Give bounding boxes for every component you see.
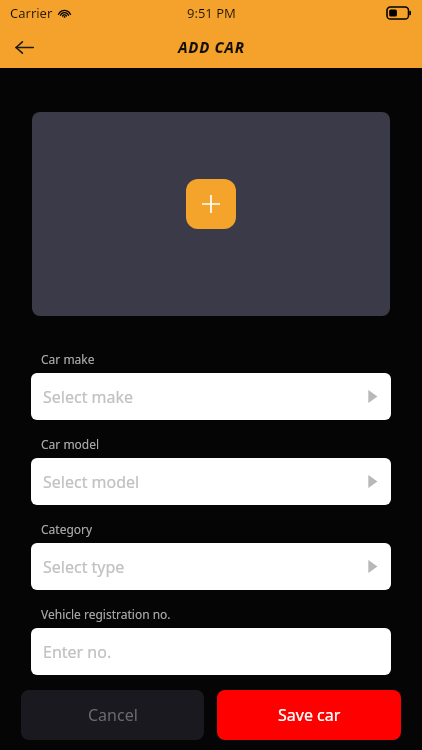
staticText: Cancel — [88, 704, 138, 726]
button[interactable]: Cancel — [21, 690, 204, 740]
staticText: Category — [41, 521, 93, 537]
staticText: Select make — [43, 386, 134, 408]
staticText: Enter no. — [43, 641, 112, 663]
staticText: Car make — [41, 351, 95, 367]
staticText: Car model — [41, 436, 100, 452]
staticText: Select type — [43, 556, 125, 578]
staticText: Vehicle registration no. — [41, 606, 171, 622]
button[interactable]: Save car — [217, 690, 401, 740]
button[interactable]: Back — [6, 29, 42, 65]
button[interactable]: Select model — [31, 458, 391, 505]
staticText: 9:51 PM — [187, 4, 236, 22]
staticText: ADD CAR — [178, 37, 245, 57]
button[interactable]: Select type — [31, 543, 391, 590]
button[interactable]: Enter no. — [31, 628, 391, 675]
staticText: Carrier — [10, 4, 53, 22]
button[interactable]: Select make — [31, 373, 391, 420]
button[interactable]: Add car photo — [32, 112, 390, 316]
staticText: Save car — [278, 704, 341, 726]
staticText: Select model — [43, 471, 140, 493]
